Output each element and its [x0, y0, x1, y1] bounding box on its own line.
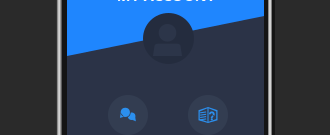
- button[interactable]: Help: [188, 95, 228, 135]
- button[interactable]: Messages: [108, 95, 148, 135]
- staticText: MY ACCOUNT: [116, 0, 214, 5]
